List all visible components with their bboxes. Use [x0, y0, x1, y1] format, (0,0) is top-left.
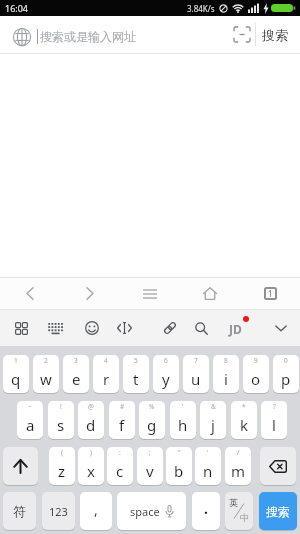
button[interactable]: @: [78, 401, 104, 439]
button[interactable]: [264, 310, 298, 346]
button[interactable]: [260, 447, 296, 485]
staticText: 6: [164, 356, 168, 365]
button[interactable]: [60, 278, 120, 309]
staticText: ": [178, 448, 181, 457]
staticText: 3: [74, 356, 78, 365]
button[interactable]: 123: [42, 492, 75, 530]
button[interactable]: 英: [225, 492, 253, 530]
staticText: x: [87, 461, 95, 481]
staticText: ;: [149, 448, 151, 457]
staticText: 搜索: [266, 504, 290, 519]
button[interactable]: #: [109, 401, 135, 439]
staticText: a: [26, 415, 35, 435]
staticText: h: [178, 415, 188, 435]
staticText: 1: [268, 288, 273, 299]
button[interactable]: 1: [240, 278, 300, 309]
button[interactable]: [153, 310, 187, 346]
button[interactable]: ): [78, 447, 104, 485]
button[interactable]: .: [192, 492, 220, 530]
staticText: u: [191, 369, 201, 389]
staticText: j: [211, 415, 215, 435]
button[interactable]: 4: [93, 355, 119, 393]
button[interactable]: *: [231, 401, 257, 439]
staticText: (: [61, 448, 63, 457]
button[interactable]: ;: [137, 447, 163, 485]
staticText: v: [146, 461, 154, 481]
staticText: ?: [273, 402, 276, 411]
button[interactable]: /: [225, 447, 251, 485]
button[interactable]: [75, 310, 109, 346]
staticText: 123: [49, 504, 68, 519]
staticText: n: [203, 461, 213, 481]
staticText: @: [88, 402, 94, 411]
staticText: :: [119, 448, 121, 457]
button[interactable]: 5: [123, 355, 149, 393]
staticText: t: [133, 369, 139, 389]
button[interactable]: 符: [3, 492, 36, 530]
staticText: p: [281, 369, 291, 389]
button[interactable]: [38, 310, 72, 346]
button[interactable]: [0, 278, 60, 309]
button[interactable]: 2: [33, 355, 59, 393]
button[interactable]: &: [200, 401, 226, 439]
button[interactable]: 9: [243, 355, 269, 393]
staticText: JD: [229, 321, 242, 337]
staticText: 搜索: [262, 27, 288, 43]
staticText: %: [149, 402, 155, 411]
staticText: 英: [229, 497, 238, 508]
staticText: ~: [28, 402, 32, 411]
staticText: c: [116, 461, 124, 481]
staticText: /: [237, 448, 240, 457]
staticText: ,: [94, 500, 98, 519]
button[interactable]: 3: [63, 355, 89, 393]
staticText: !: [60, 402, 62, 411]
staticText: *: [242, 402, 246, 411]
button[interactable]: [4, 310, 38, 346]
staticText: 1: [14, 356, 18, 365]
button[interactable]: !: [48, 401, 74, 439]
staticText: y: [162, 369, 170, 389]
button[interactable]: [0, 16, 228, 53]
button[interactable]: ?: [261, 401, 287, 439]
button[interactable]: 7: [183, 355, 209, 393]
button[interactable]: JD: [223, 310, 257, 346]
staticText: f: [119, 415, 125, 435]
button[interactable]: 6: [153, 355, 179, 393]
staticText: ': [207, 448, 209, 457]
button[interactable]: 0: [273, 355, 299, 393]
button[interactable]: ': [195, 447, 221, 485]
button[interactable]: space: [117, 492, 186, 530]
staticText: 5: [134, 356, 138, 365]
staticText: i: [224, 369, 228, 389]
staticText: ': [182, 402, 184, 411]
button[interactable]: 搜索: [254, 16, 296, 53]
staticText: 2: [44, 356, 48, 365]
button[interactable]: 1: [3, 355, 29, 393]
button[interactable]: (: [49, 447, 75, 485]
button[interactable]: ': [170, 401, 196, 439]
button[interactable]: [107, 310, 141, 346]
button[interactable]: 8: [213, 355, 239, 393]
button[interactable]: ,: [80, 492, 112, 530]
button[interactable]: [226, 20, 257, 49]
button[interactable]: %: [139, 401, 165, 439]
button[interactable]: [3, 447, 38, 485]
button[interactable]: [184, 310, 218, 346]
staticText: ): [90, 448, 92, 457]
staticText: &: [211, 402, 216, 411]
button[interactable]: [180, 278, 240, 309]
staticText: k: [240, 415, 249, 435]
button[interactable]: [120, 278, 180, 309]
staticText: s: [57, 415, 65, 435]
staticText: z: [58, 461, 66, 481]
staticText: b: [174, 461, 184, 481]
button[interactable]: :: [107, 447, 133, 485]
staticText: 符: [13, 503, 26, 519]
staticText: 3.84K/s: [187, 3, 215, 14]
button[interactable]: 搜索: [259, 492, 297, 530]
button[interactable]: ~: [17, 401, 43, 439]
staticText: 搜索或是输入网址: [40, 29, 136, 44]
button[interactable]: ": [166, 447, 192, 485]
staticText: d: [86, 415, 96, 435]
staticText: 0: [284, 356, 288, 365]
